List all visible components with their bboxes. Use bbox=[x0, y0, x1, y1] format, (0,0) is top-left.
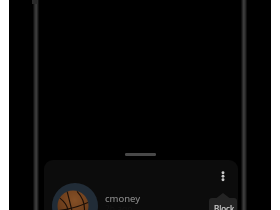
staticText: cmoney bbox=[105, 192, 141, 205]
button[interactable]: Profile picture bbox=[52, 183, 98, 210]
staticText: Block bbox=[214, 203, 235, 210]
button[interactable]: More options bbox=[211, 164, 235, 188]
button[interactable]: Block bbox=[209, 193, 237, 210]
